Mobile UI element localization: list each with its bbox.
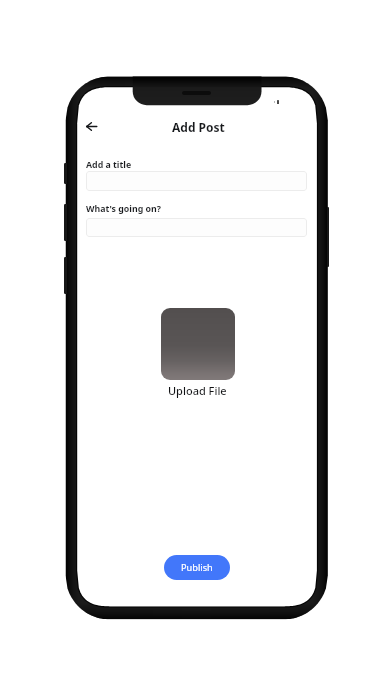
staticText: Publish [181,561,213,574]
button[interactable]: Upload File image [161,308,235,380]
staticText: What's going on? [86,203,161,215]
staticText: Upload File [168,383,227,398]
staticText: Add a title [86,159,132,171]
staticText: Add Post [172,119,225,135]
button[interactable] [86,171,307,191]
button[interactable]: Publish [164,555,230,580]
button[interactable] [86,218,307,237]
button[interactable]: Back [78,113,104,139]
